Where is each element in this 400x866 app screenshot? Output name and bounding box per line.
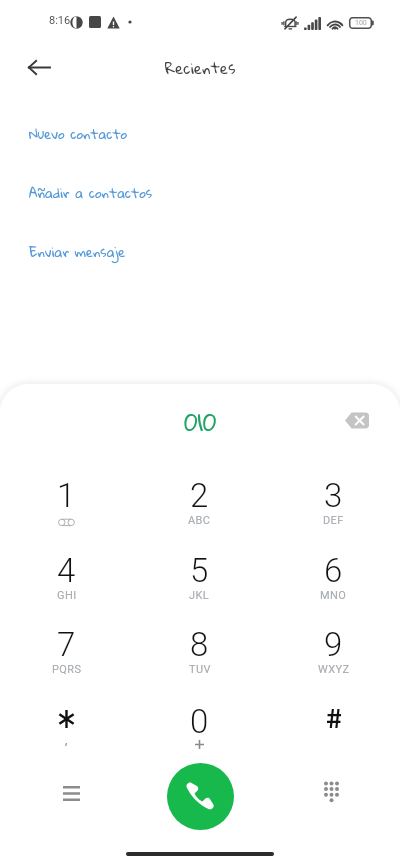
button[interactable]: Backspace bbox=[336, 400, 376, 440]
staticText: Nuevo contacto bbox=[29, 121, 128, 147]
staticText: 1 bbox=[57, 476, 76, 515]
button[interactable]: Enviar mensaje bbox=[0, 239, 400, 265]
button[interactable]: 4 bbox=[0, 537, 133, 611]
staticText: Añadir a contactos bbox=[29, 180, 152, 206]
staticText: DEF bbox=[323, 514, 344, 527]
staticText: 7 bbox=[57, 625, 76, 664]
staticText: 6 bbox=[324, 551, 343, 590]
button[interactable]: 9 bbox=[267, 611, 400, 685]
staticText: , bbox=[65, 733, 68, 747]
button[interactable]: 0 bbox=[133, 688, 266, 762]
button[interactable]: Nuevo contacto bbox=[0, 121, 400, 147]
button[interactable]: 2 bbox=[133, 462, 266, 536]
button[interactable]: 7 bbox=[0, 611, 133, 685]
staticText: 5 bbox=[190, 551, 209, 590]
button[interactable]: Dialpad bbox=[311, 771, 351, 811]
staticText: 8 bbox=[190, 625, 209, 664]
button[interactable]: 6 bbox=[267, 537, 400, 611]
button[interactable]: Call bbox=[167, 763, 234, 830]
staticText: ABC bbox=[188, 514, 211, 527]
staticText: MNO bbox=[320, 589, 347, 602]
staticText: 0 bbox=[190, 702, 209, 741]
staticText: 3 bbox=[324, 476, 343, 515]
button[interactable]: , bbox=[0, 688, 133, 762]
staticText: 010 bbox=[184, 399, 217, 445]
staticText: 9 bbox=[324, 625, 343, 664]
button[interactable]: Call log bbox=[51, 773, 91, 813]
button[interactable]: Añadir a contactos bbox=[0, 180, 400, 206]
staticText: JKL bbox=[189, 589, 210, 602]
button[interactable]: 8 bbox=[133, 611, 266, 685]
staticText: 100 bbox=[355, 19, 367, 27]
staticText: TUV bbox=[189, 663, 211, 676]
staticText: GHI bbox=[57, 589, 77, 602]
button[interactable]: Back bbox=[21, 49, 57, 85]
staticText: 2 bbox=[190, 476, 209, 515]
staticText: 4 bbox=[57, 551, 76, 590]
staticText: Enviar mensaje bbox=[29, 239, 126, 265]
staticText: PQRS bbox=[52, 663, 82, 676]
button[interactable]: 5 bbox=[133, 537, 266, 611]
staticText: Recientes bbox=[165, 53, 236, 83]
button[interactable] bbox=[267, 688, 400, 762]
button[interactable]: 3 bbox=[267, 462, 400, 536]
staticText: 8:16 bbox=[49, 14, 71, 27]
staticText: WXYZ bbox=[318, 663, 350, 676]
button[interactable]: 1 bbox=[0, 462, 133, 536]
